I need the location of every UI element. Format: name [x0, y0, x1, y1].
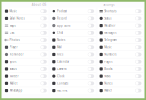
staticText: Status — [104, 17, 111, 20]
button[interactable]: Notes — [98, 80, 143, 87]
staticText: Music — [104, 45, 111, 49]
staticText: Player — [10, 45, 18, 49]
button[interactable]: Numbers — [98, 51, 143, 58]
staticText: Wallet — [10, 82, 18, 85]
button[interactable]: Shortcuts — [98, 8, 143, 15]
staticText: Sport — [10, 60, 17, 63]
staticText: Podcast — [57, 9, 67, 13]
staticText: Status — [10, 67, 17, 71]
button[interactable]: Camera — [50, 65, 96, 72]
staticText: App Store — [57, 24, 71, 27]
button[interactable]: Mail — [50, 44, 96, 51]
staticText: Chat — [57, 31, 63, 34]
staticText: Numbers — [104, 53, 116, 56]
staticText: About iOS — [32, 3, 46, 6]
button[interactable]: Clock — [50, 73, 96, 80]
button[interactable]: Photos — [3, 37, 48, 43]
button[interactable]: Record — [50, 15, 96, 22]
button[interactable]: Messages — [98, 29, 143, 36]
staticText: Messages — [104, 31, 116, 34]
staticText: Wallet — [104, 89, 112, 92]
staticText: Books — [104, 67, 112, 71]
button[interactable]: Files — [50, 51, 96, 58]
button[interactable]: Player — [3, 44, 48, 51]
staticText: Calendar — [57, 60, 69, 63]
staticText: WhatsApp — [10, 89, 23, 92]
staticText: Pages — [104, 60, 112, 63]
button[interactable]: Chat — [50, 29, 96, 36]
button[interactable]: Wallet — [98, 87, 143, 94]
staticText: Record — [57, 17, 67, 20]
button[interactable]: FaceTime — [50, 87, 96, 94]
staticText: Music — [10, 9, 17, 13]
button[interactable]: Wallet — [3, 80, 48, 87]
staticText: Maps — [10, 24, 16, 27]
staticText: FaceTime — [57, 89, 68, 92]
staticText: Photos — [10, 38, 20, 42]
button[interactable]: News — [98, 73, 143, 80]
staticText: Telegram — [104, 38, 116, 42]
staticText: Files — [57, 53, 63, 56]
button[interactable]: Music — [3, 8, 48, 15]
button[interactable]: Status — [3, 65, 48, 72]
button[interactable]: Sport — [3, 58, 48, 65]
staticText: Notes — [57, 38, 65, 42]
button[interactable]: Cast — [3, 29, 48, 36]
button[interactable]: Reminder — [3, 51, 48, 58]
button[interactable]: Telegram — [98, 37, 143, 43]
button[interactable]: Notes — [50, 37, 96, 43]
staticText: Shortcuts — [104, 9, 116, 13]
button[interactable]: Music — [98, 44, 143, 51]
staticText: Camera — [57, 67, 66, 71]
staticText: News — [104, 74, 110, 78]
staticText: Twitter — [10, 74, 19, 78]
staticText: Safari Notes — [10, 17, 25, 20]
button[interactable]: Safari Notes — [3, 15, 48, 22]
button[interactable]: Podcast — [50, 8, 96, 15]
staticText: Settings — [103, 3, 114, 6]
button[interactable]: Status — [98, 15, 143, 22]
staticText: Cast — [10, 31, 15, 34]
button[interactable]: Maps — [3, 22, 48, 29]
staticText: Weather — [104, 24, 115, 27]
button[interactable]: Contacts — [50, 80, 96, 87]
button[interactable]: WhatsApp — [3, 87, 48, 94]
staticText: Clock — [57, 74, 64, 78]
staticText: Notes — [104, 82, 112, 85]
staticText: Contacts — [57, 82, 68, 85]
button[interactable]: Books — [98, 65, 143, 72]
button[interactable]: Calendar — [50, 58, 96, 65]
button[interactable]: App Store — [50, 22, 96, 29]
staticText: Reminder — [10, 53, 24, 56]
button[interactable]: Weather — [98, 22, 143, 29]
button[interactable]: Pages — [98, 58, 143, 65]
staticText: Mail — [57, 45, 62, 49]
button[interactable]: Twitter — [3, 73, 48, 80]
